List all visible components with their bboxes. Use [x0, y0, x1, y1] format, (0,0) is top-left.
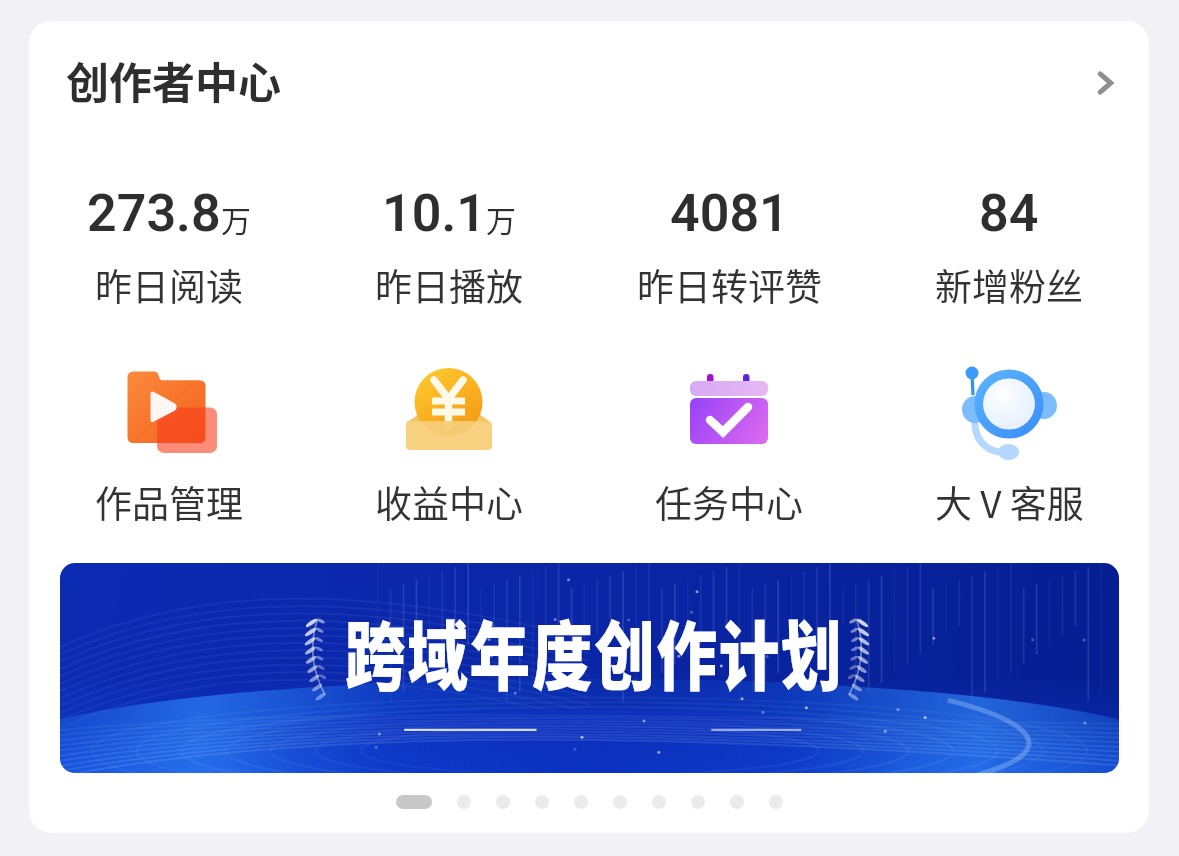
button[interactable]: 273.8 — [29, 183, 309, 312]
staticText: 收益中心 — [375, 475, 523, 529]
staticText: 跨域年度创作计划 — [345, 597, 844, 706]
button[interactable]: 创作者中心 — [29, 21, 1149, 139]
button[interactable]: 跨域年度创作计划 — [60, 563, 1119, 773]
staticText: 昨日转评赞 — [637, 258, 822, 312]
button[interactable]: 4081 — [589, 183, 869, 312]
button[interactable]: 作品管理 — [29, 362, 309, 529]
staticText: 10.1 — [382, 183, 486, 233]
staticText: 大 V 客服 — [935, 475, 1084, 529]
button[interactable]: 任务中心 — [589, 362, 869, 529]
staticText: 万 — [486, 197, 516, 240]
button[interactable]: 10.1 — [309, 183, 589, 312]
staticText: 万 — [221, 197, 251, 240]
staticText: 作品管理 — [95, 475, 243, 529]
button[interactable]: 收益中心 — [309, 362, 589, 529]
staticText: 创作者中心 — [66, 49, 281, 111]
staticText: 4081 — [670, 183, 789, 233]
staticText: 昨日阅读 — [95, 258, 243, 312]
staticText: 273.8 — [87, 183, 221, 233]
button[interactable]: 大V客服 — [869, 362, 1149, 529]
staticText: 84 — [979, 183, 1039, 233]
staticText: 新增粉丝 — [935, 258, 1083, 312]
staticText: 任务中心 — [655, 475, 803, 529]
other: 进入创作者中心 — [1089, 66, 1123, 100]
button[interactable]: 84 — [869, 183, 1149, 312]
staticText: 昨日播放 — [375, 258, 523, 312]
